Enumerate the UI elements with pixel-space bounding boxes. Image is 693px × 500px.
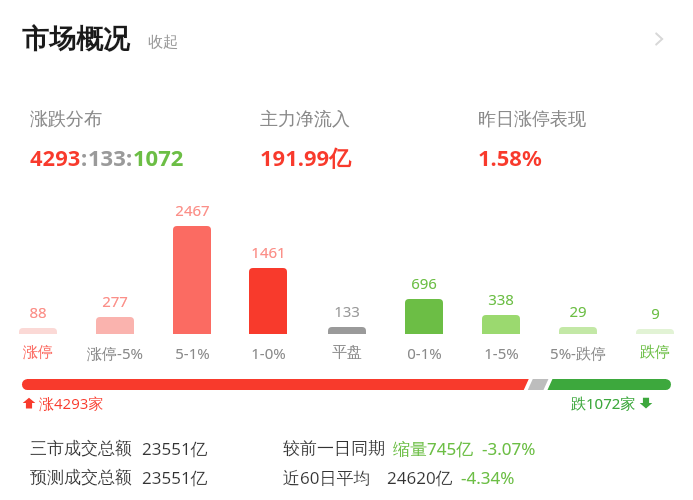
staticText: 133	[334, 301, 360, 321]
staticText: 涨停-5%	[87, 343, 143, 363]
staticText: 近60日平均	[283, 466, 371, 489]
button[interactable]: 昨日涨停表现	[478, 108, 586, 172]
button[interactable]: 5-1%	[147, 343, 237, 363]
staticText: 预测成交总额	[30, 467, 132, 488]
staticText: 三市成交总额	[30, 438, 132, 459]
staticText: 跌停	[640, 343, 670, 362]
staticText: 涨4293家	[39, 393, 104, 413]
staticText: 5%-跌停	[550, 343, 606, 363]
staticText: 9	[651, 303, 660, 323]
button[interactable]: 5%-跌停	[533, 343, 623, 363]
staticText: 市场概况	[22, 22, 130, 56]
button[interactable]: 主力净流入	[260, 108, 352, 172]
button[interactable]: 收起	[148, 33, 178, 52]
staticText: 29	[569, 301, 587, 321]
button[interactable]: 展开详情	[641, 21, 677, 57]
staticText: 1.58%	[478, 142, 542, 172]
staticText: 主力净流入	[260, 108, 350, 131]
button[interactable]: 上涨	[22, 393, 104, 413]
staticText: 133	[88, 142, 126, 172]
staticText: 1072	[133, 142, 184, 172]
staticText: -4.34%	[461, 466, 515, 489]
staticText: 23551亿	[142, 466, 208, 489]
staticText: :	[81, 142, 88, 172]
staticText: 277	[102, 291, 128, 311]
button[interactable]: 涨停-5%	[70, 343, 160, 363]
button[interactable]: 平盘	[302, 343, 392, 362]
staticText: 2467	[175, 200, 210, 220]
button[interactable]: 市场概况	[0, 0, 693, 78]
staticText: 昨日涨停表现	[478, 108, 586, 131]
staticText: 1-0%	[251, 343, 286, 363]
staticText: 较前一日同期	[283, 438, 385, 459]
staticText: -3.07%	[482, 437, 536, 460]
other: 上涨	[22, 396, 36, 410]
staticText: 191.99亿	[260, 142, 352, 172]
button[interactable]: 涨停	[0, 343, 83, 362]
staticText: 696	[411, 273, 437, 293]
button[interactable]: 1-5%	[456, 343, 546, 363]
staticText: 0-1%	[407, 343, 442, 363]
staticText: :	[126, 142, 133, 172]
button[interactable]: 1-0%	[223, 343, 313, 363]
staticText: 23551亿	[142, 437, 208, 460]
staticText: 88	[29, 302, 47, 322]
staticText: 涨跌分布	[30, 108, 102, 131]
staticText: 338	[488, 289, 514, 309]
staticText: 跌1072家	[571, 393, 636, 413]
other: 下跌	[639, 396, 653, 410]
staticText: 收起	[148, 33, 178, 52]
staticText: 24620亿	[387, 466, 453, 489]
staticText: 平盘	[332, 343, 362, 362]
staticText: 1461	[251, 242, 286, 262]
staticText: 5-1%	[175, 343, 210, 363]
button[interactable]: 跌1072家	[571, 393, 653, 413]
button[interactable]: 跌停	[610, 343, 693, 362]
staticText: 4293	[30, 142, 81, 172]
button[interactable]: 涨跌分布	[30, 108, 184, 172]
button[interactable]: 0-1%	[379, 343, 469, 363]
staticText: 缩量745亿	[393, 437, 474, 460]
staticText: 涨停	[23, 343, 53, 362]
staticText: 1-5%	[484, 343, 519, 363]
